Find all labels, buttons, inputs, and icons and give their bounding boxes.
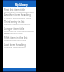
staticText: Supporting text line (4, 38, 27, 41)
staticText: Secondary supporting text (4, 10, 34, 13)
staticText: A short description here (4, 16, 32, 19)
staticText: My Library (15, 3, 28, 6)
staticText: First list item title (4, 8, 25, 12)
staticText: First line of the description goes (4, 29, 37, 35)
staticText: Trailing description (4, 45, 26, 48)
staticText: Third entry in list (4, 20, 25, 24)
staticText: Fifth item in the list (4, 36, 28, 40)
staticText: Another item heading (4, 13, 31, 17)
staticText: on a second row (4, 31, 23, 34)
staticText: Last item heading (4, 43, 26, 47)
staticText: Longer item title (4, 27, 25, 31)
staticText: Details about this entry (4, 22, 31, 25)
